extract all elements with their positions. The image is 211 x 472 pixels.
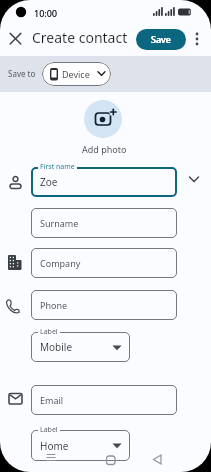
staticText: Label [40, 327, 58, 337]
staticText: Surname [40, 217, 79, 229]
staticText: Label [40, 425, 58, 435]
staticText: Email [40, 394, 64, 406]
staticText: Save to [8, 68, 36, 79]
staticText: Company [40, 257, 81, 269]
staticText: Mobile [40, 340, 73, 354]
staticText: Phone [40, 299, 68, 311]
staticText: 10:00 [34, 7, 58, 19]
staticText: Zoe [40, 175, 58, 189]
staticText: Save [151, 33, 171, 45]
staticText: Home [40, 439, 69, 453]
staticText: Add photo [82, 143, 127, 155]
staticText: Create contact [32, 28, 128, 47]
staticText: 10:00 [34, 7, 58, 19]
staticText: Save [151, 33, 172, 45]
staticText: First name [40, 162, 75, 172]
staticText: Device [62, 68, 90, 80]
